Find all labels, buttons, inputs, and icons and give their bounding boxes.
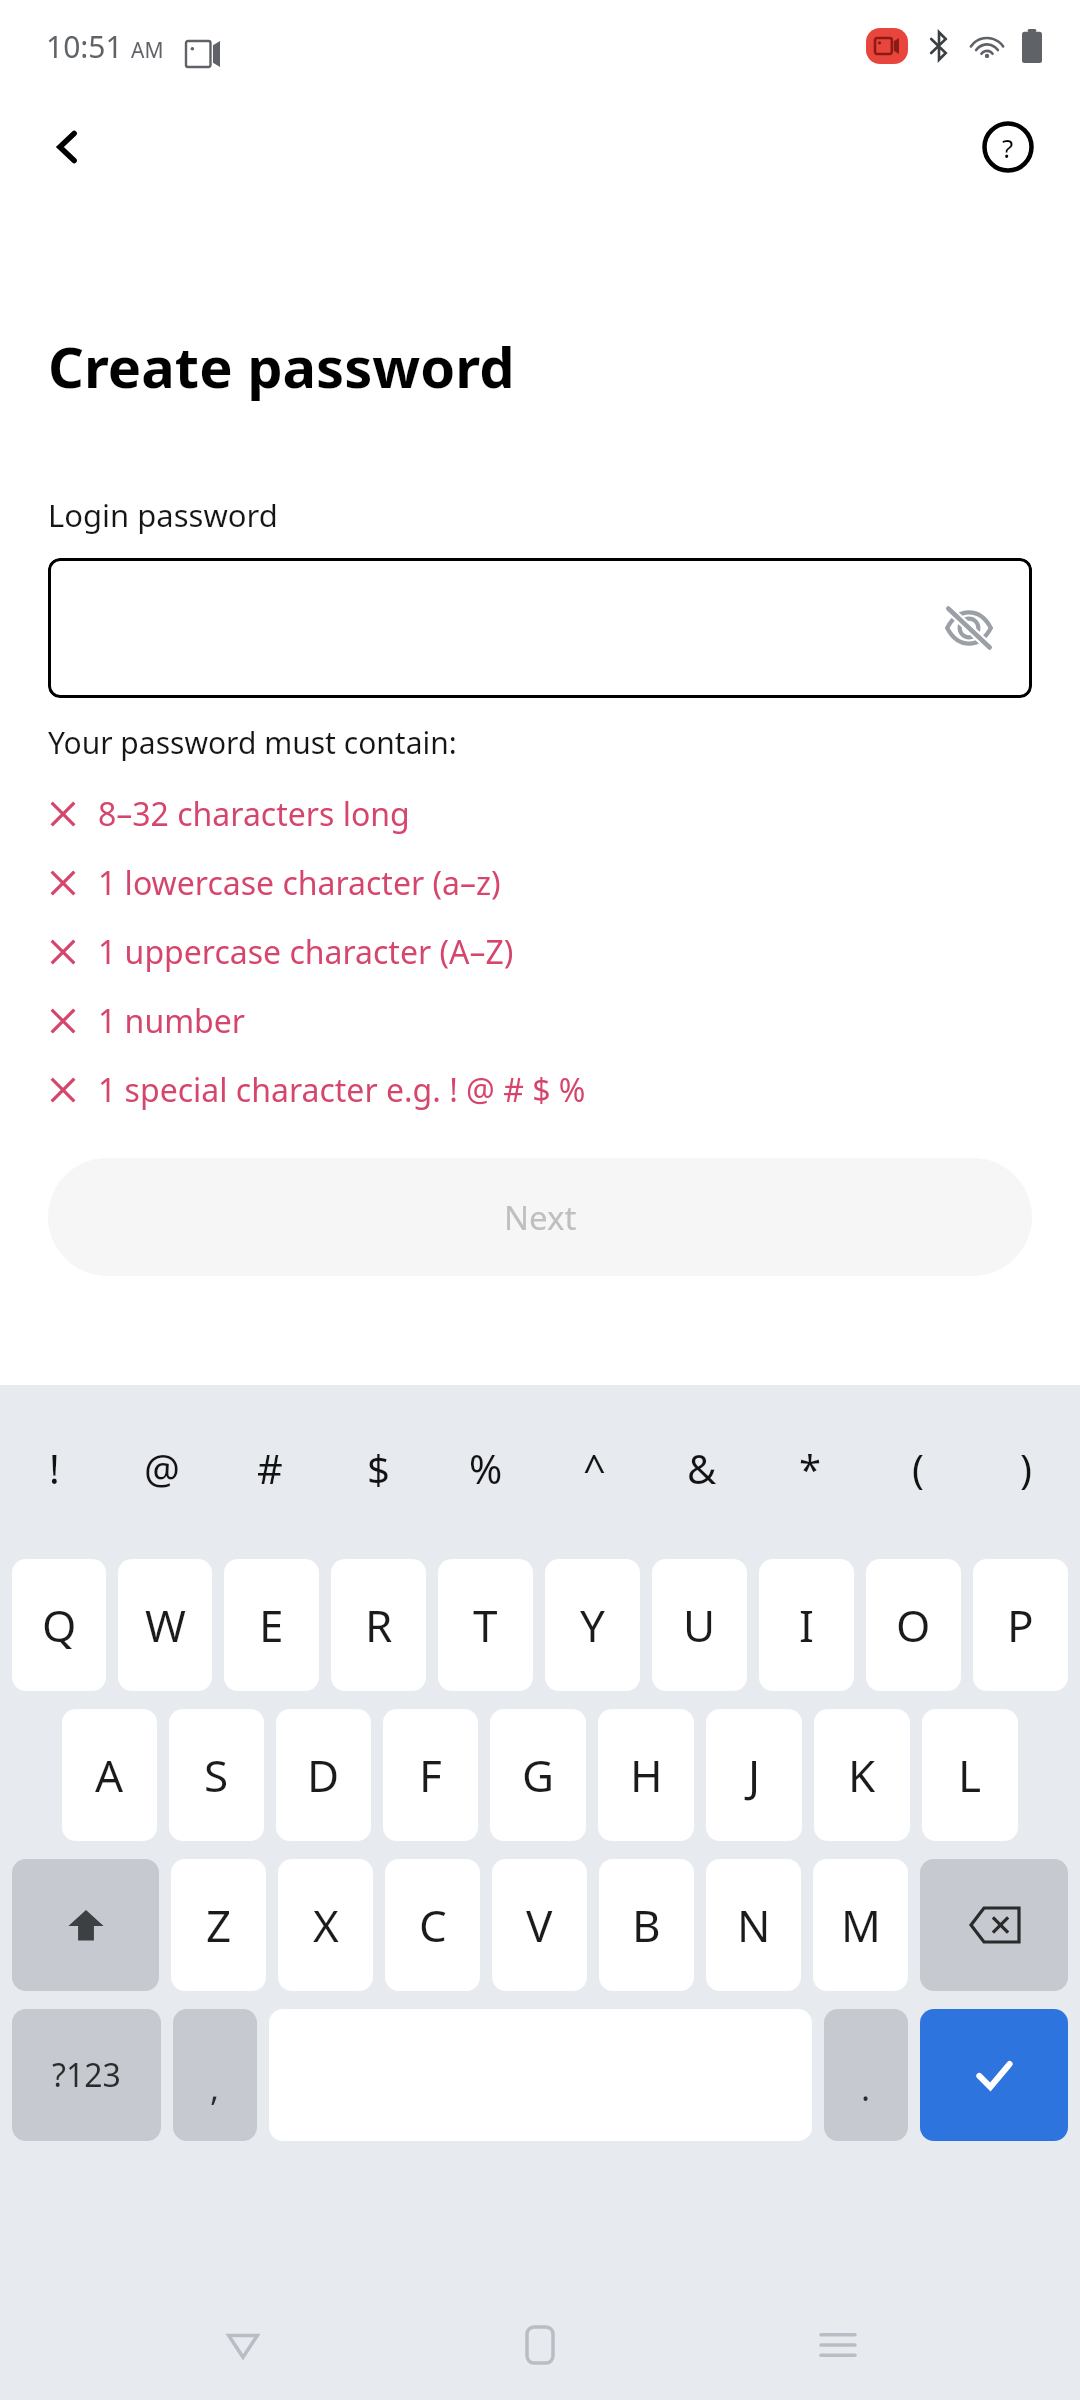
staticText: 1 number bbox=[98, 999, 246, 1043]
button[interactable]: ^ bbox=[540, 1385, 648, 1550]
button[interactable]: P bbox=[973, 1559, 1068, 1691]
button[interactable]: Recents bbox=[783, 2290, 893, 2400]
button[interactable]: . bbox=[824, 2009, 908, 2141]
staticText: Login password bbox=[48, 494, 278, 536]
staticText: ^ bbox=[583, 1441, 606, 1495]
button[interactable]: K bbox=[814, 1709, 910, 1841]
staticText: T bbox=[473, 1595, 498, 1655]
staticText: V bbox=[526, 1895, 553, 1955]
button[interactable]: A bbox=[62, 1709, 157, 1841]
button[interactable]: Z bbox=[171, 1859, 266, 1991]
staticText: Y bbox=[580, 1595, 605, 1655]
staticText: 10:51 bbox=[46, 26, 123, 67]
button[interactable]: N bbox=[706, 1859, 801, 1991]
staticText: I bbox=[799, 1595, 814, 1655]
button[interactable]: % bbox=[432, 1385, 540, 1550]
button[interactable]: G bbox=[490, 1709, 586, 1841]
staticText: P bbox=[1007, 1595, 1034, 1655]
staticText: AM bbox=[131, 36, 164, 65]
staticText: U bbox=[683, 1595, 716, 1655]
staticText: 8–32 characters long bbox=[98, 792, 410, 836]
staticText: . bbox=[861, 2065, 871, 2111]
staticText: $ bbox=[367, 1441, 390, 1495]
staticText: Next bbox=[504, 1195, 577, 1240]
button[interactable]: R bbox=[331, 1559, 426, 1691]
staticText: B bbox=[632, 1895, 661, 1955]
button[interactable]: W bbox=[118, 1559, 212, 1691]
button[interactable]: C bbox=[385, 1859, 480, 1991]
staticText: ( bbox=[912, 1441, 924, 1495]
button[interactable]: * bbox=[756, 1385, 864, 1550]
button[interactable]: Show password bbox=[48, 558, 1032, 698]
button[interactable]: $ bbox=[324, 1385, 432, 1550]
staticText: D bbox=[307, 1745, 340, 1805]
staticText: ! bbox=[49, 1441, 60, 1495]
button[interactable]: F bbox=[383, 1709, 478, 1841]
button[interactable]: Next bbox=[48, 1158, 1032, 1276]
button[interactable]: J bbox=[706, 1709, 802, 1841]
staticText: F bbox=[419, 1745, 442, 1805]
button[interactable]: Y bbox=[545, 1559, 640, 1691]
button[interactable]: & bbox=[648, 1385, 756, 1550]
staticText: K bbox=[848, 1745, 876, 1805]
button[interactable]: B bbox=[599, 1859, 694, 1991]
staticText: O bbox=[896, 1595, 931, 1655]
button[interactable]: E bbox=[224, 1559, 319, 1691]
button[interactable]: I bbox=[759, 1559, 854, 1691]
button[interactable]: Back bbox=[188, 2290, 298, 2400]
button[interactable]: Help bbox=[968, 107, 1048, 187]
staticText: , bbox=[210, 2065, 220, 2111]
button[interactable]: , bbox=[173, 2009, 257, 2141]
button[interactable]: ! bbox=[0, 1385, 108, 1550]
staticText: * bbox=[799, 1441, 822, 1495]
button[interactable]: Shift bbox=[12, 1859, 159, 1991]
button[interactable]: M bbox=[813, 1859, 908, 1991]
staticText: Q bbox=[42, 1595, 77, 1655]
button[interactable]: D bbox=[276, 1709, 371, 1841]
button[interactable]: U bbox=[652, 1559, 747, 1691]
button[interactable]: Back bbox=[28, 107, 108, 187]
button[interactable]: O bbox=[866, 1559, 961, 1691]
staticText: 1 lowercase character (a–z) bbox=[98, 861, 501, 905]
staticText: M bbox=[841, 1895, 881, 1955]
staticText: ? bbox=[1002, 130, 1014, 165]
button[interactable]: Home bbox=[485, 2290, 595, 2400]
button[interactable]: @ bbox=[108, 1385, 216, 1550]
button[interactable]: Backspace bbox=[920, 1859, 1068, 1991]
staticText: # bbox=[257, 1441, 283, 1495]
button[interactable]: Enter bbox=[920, 2009, 1068, 2141]
staticText: Your password must contain: bbox=[48, 722, 457, 763]
staticText: 1 special character e.g. ! @ # $ % bbox=[98, 1068, 586, 1112]
staticText: ?123 bbox=[52, 2053, 121, 2097]
staticText: @ bbox=[144, 1441, 180, 1495]
button[interactable]: V bbox=[492, 1859, 587, 1991]
staticText: A bbox=[95, 1745, 124, 1805]
button[interactable]: # bbox=[216, 1385, 324, 1550]
button[interactable]: ) bbox=[972, 1385, 1080, 1550]
staticText: S bbox=[204, 1745, 229, 1805]
staticText: X bbox=[313, 1895, 339, 1955]
staticText: W bbox=[145, 1595, 186, 1655]
staticText: Z bbox=[206, 1895, 232, 1955]
button[interactable]: Q bbox=[12, 1559, 106, 1691]
button[interactable]: S bbox=[169, 1709, 264, 1841]
button[interactable]: ( bbox=[864, 1385, 972, 1550]
staticText: C bbox=[419, 1895, 447, 1955]
button[interactable]: T bbox=[438, 1559, 533, 1691]
button[interactable]: ?123 bbox=[12, 2009, 161, 2141]
button[interactable]: H bbox=[598, 1709, 694, 1841]
staticText: E bbox=[259, 1595, 284, 1655]
staticText: J bbox=[748, 1745, 761, 1805]
staticText: ) bbox=[1020, 1441, 1032, 1495]
button[interactable]: Show password bbox=[936, 595, 1002, 661]
staticText: G bbox=[522, 1745, 555, 1805]
staticText: % bbox=[469, 1441, 503, 1495]
button[interactable]: X bbox=[278, 1859, 373, 1991]
staticText: L bbox=[958, 1745, 982, 1805]
staticText: H bbox=[630, 1745, 663, 1805]
staticText: Create password bbox=[48, 328, 515, 404]
staticText: & bbox=[687, 1441, 717, 1495]
button[interactable]: L bbox=[922, 1709, 1018, 1841]
staticText: 1 uppercase character (A–Z) bbox=[98, 930, 514, 974]
